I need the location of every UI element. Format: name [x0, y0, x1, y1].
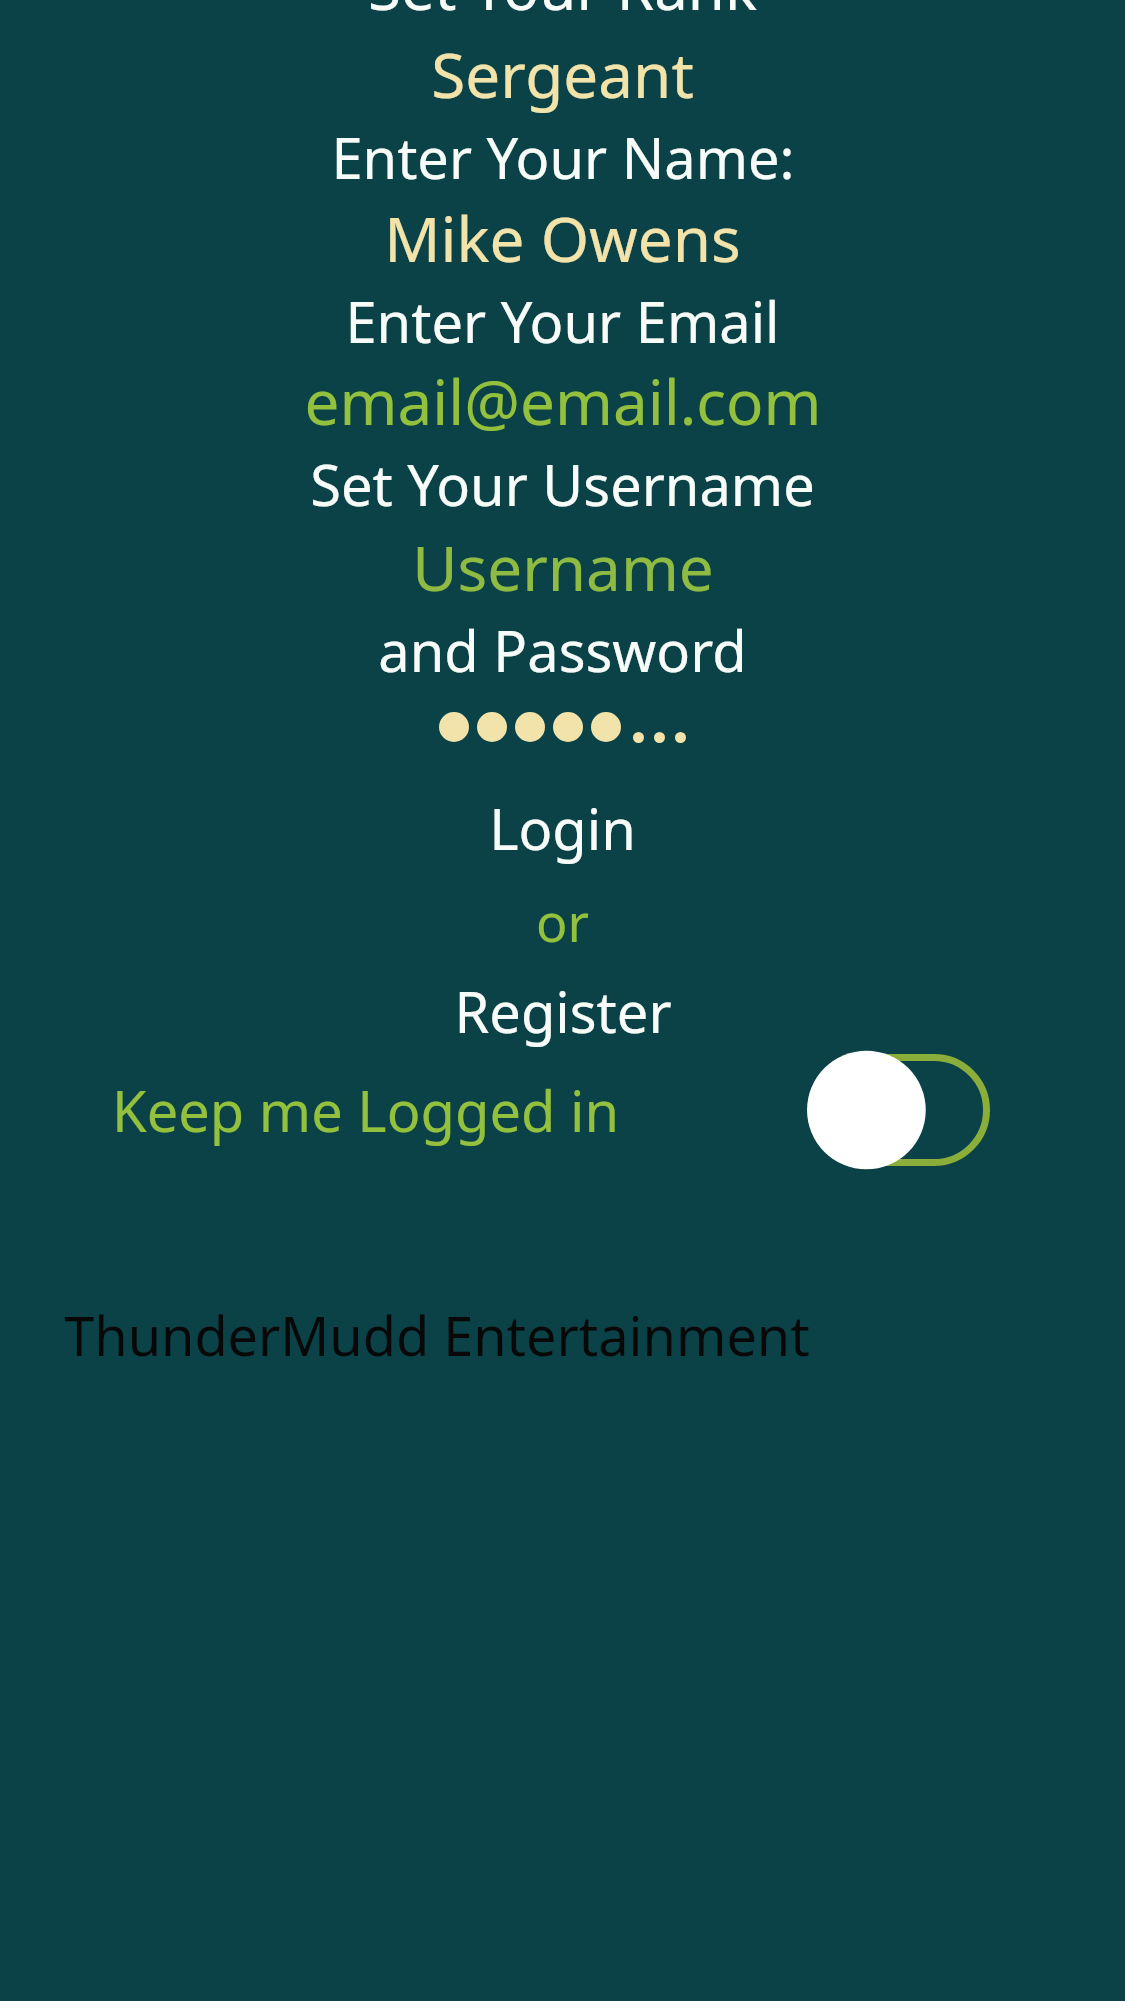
button[interactable]: Register: [0, 973, 1125, 1049]
staticText: Register: [454, 973, 672, 1049]
staticText: Login: [489, 790, 636, 866]
staticText: Sergeant: [431, 32, 694, 116]
button[interactable]: Keep me logged in: [810, 1054, 990, 1166]
staticText: Username: [412, 525, 714, 609]
staticText: email@email.com: [304, 359, 822, 443]
staticText: Keep me Logged in: [112, 1072, 620, 1148]
button[interactable]: Login: [0, 790, 1125, 866]
staticText: Set Your Username: [310, 446, 815, 522]
staticText: Enter Your Email: [345, 283, 780, 359]
staticText: ThunderMudd Entertainment: [64, 1298, 810, 1372]
button[interactable]: Keep me Logged in: [112, 1072, 620, 1148]
staticText: and Password: [378, 612, 747, 688]
staticText: or: [536, 886, 589, 957]
staticText: Set Your Rank: [368, 0, 757, 28]
staticText: Mike Owens: [384, 196, 741, 280]
staticText: Enter Your Name:: [331, 119, 795, 195]
